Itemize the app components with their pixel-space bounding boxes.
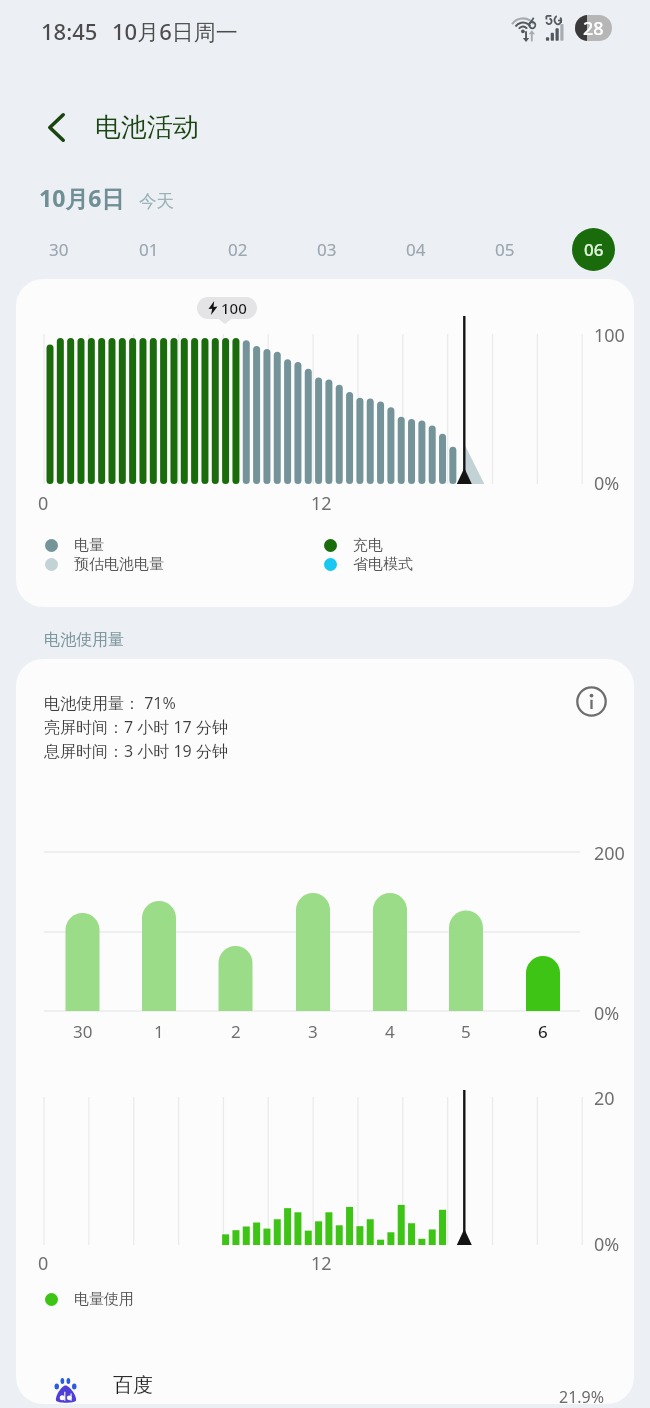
staticText: 12 — [311, 1251, 332, 1276]
staticText: 电量使用 — [74, 1290, 134, 1309]
staticText: 充电 — [353, 536, 383, 555]
staticText: 预估电池电量 — [74, 555, 164, 574]
staticText: 省电模式 — [353, 555, 413, 574]
button[interactable]: 充电 — [324, 536, 383, 555]
button[interactable]: 电量 — [45, 536, 104, 555]
button[interactable]: 02 — [193, 227, 282, 271]
button[interactable]: 30 — [14, 227, 104, 271]
staticText: 3 — [308, 1020, 318, 1043]
staticText: 0% — [594, 1232, 620, 1257]
staticText: 200 — [594, 841, 625, 866]
staticText: 02 — [228, 238, 248, 261]
staticText: 01 — [139, 238, 159, 261]
button[interactable]: 04 — [371, 227, 460, 271]
staticText: 0 — [38, 491, 49, 516]
staticText: 今天 — [139, 190, 174, 212]
button[interactable]: Back — [30, 101, 82, 153]
staticText: 05 — [495, 238, 515, 261]
staticText: 28 — [583, 16, 604, 41]
button[interactable]: 电量使用 — [45, 1290, 134, 1309]
staticText: 12 — [311, 491, 332, 516]
staticText: 4 — [385, 1020, 395, 1043]
button[interactable]: 预估电池电量 — [45, 555, 164, 574]
staticText: 21.9% — [559, 1386, 605, 1408]
staticText: 30 — [73, 1020, 93, 1043]
staticText: 20 — [594, 1086, 615, 1111]
staticText: 息屏时间：3 小时 19 分钟 — [44, 740, 228, 762]
staticText: 百度 — [113, 1373, 153, 1398]
staticText: 06 — [584, 238, 604, 261]
staticText: 100 — [221, 298, 247, 318]
staticText: 0 — [38, 1251, 49, 1276]
staticText: 亮屏时间：7 小时 17 分钟 — [44, 716, 228, 738]
staticText: 电量 — [74, 536, 104, 555]
staticText: 电池使用量 — [44, 630, 124, 650]
staticText: 10月6日周一 — [112, 16, 238, 46]
staticText: 2 — [231, 1020, 241, 1043]
staticText: 18:45 — [41, 16, 98, 46]
staticText: 0% — [594, 1001, 620, 1026]
button[interactable]: 03 — [282, 227, 371, 271]
staticText: 电池使用量： 71% — [44, 692, 176, 714]
button[interactable]: 省电模式 — [324, 555, 413, 574]
staticText: 04 — [406, 238, 426, 261]
staticText: 5 — [461, 1020, 471, 1043]
staticText: 30 — [49, 238, 69, 261]
button[interactable]: 05 — [460, 227, 549, 271]
button[interactable]: Info — [571, 681, 611, 721]
button[interactable]: 01 — [104, 227, 193, 271]
button[interactable]: 06 — [549, 227, 638, 271]
button[interactable]: 百度 — [16, 1368, 634, 1408]
staticText: 100 — [594, 323, 625, 348]
staticText: 电池活动 — [95, 111, 199, 144]
staticText: 10月6日 — [39, 182, 125, 213]
staticText: 0% — [594, 471, 620, 496]
staticText: 6 — [538, 1020, 548, 1043]
staticText: 1 — [154, 1020, 164, 1043]
staticText: 03 — [317, 238, 337, 261]
